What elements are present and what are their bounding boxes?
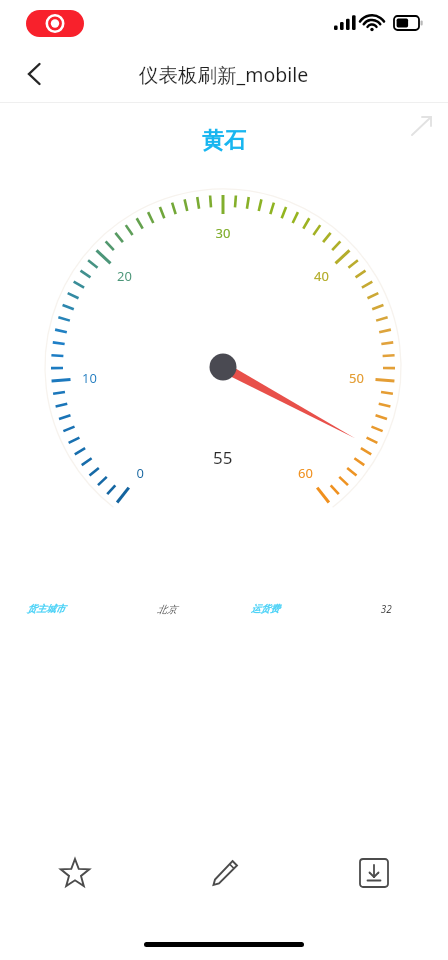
button[interactable]: Back — [8, 50, 56, 98]
button[interactable]: Recording — [26, 10, 84, 37]
button[interactable]: Expand — [404, 108, 440, 144]
button[interactable]: Download — [299, 838, 448, 908]
button[interactable]: Favorite — [0, 838, 150, 908]
button[interactable] — [224, 598, 448, 620]
button[interactable] — [0, 598, 224, 620]
button[interactable]: Edit — [150, 838, 299, 908]
